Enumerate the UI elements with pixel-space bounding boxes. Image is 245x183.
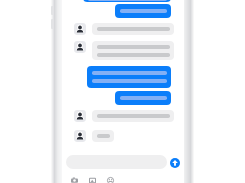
button[interactable]	[92, 130, 114, 142]
button[interactable]: Send	[170, 158, 180, 168]
button[interactable]: Contact avatar	[74, 23, 86, 35]
button[interactable]	[115, 91, 171, 105]
button[interactable]	[92, 41, 174, 60]
button[interactable]	[83, 0, 171, 2]
button[interactable]	[92, 110, 174, 122]
button[interactable]: Emoji	[107, 177, 114, 183]
button[interactable]	[92, 23, 174, 35]
button[interactable]: Camera	[71, 177, 78, 183]
button[interactable]: Gallery	[89, 177, 96, 183]
button[interactable]: Contact avatar	[74, 41, 86, 53]
button[interactable]	[87, 66, 171, 88]
button[interactable]	[115, 4, 171, 18]
button[interactable]: Contact avatar	[74, 110, 86, 122]
button[interactable]: Contact avatar	[74, 130, 86, 142]
